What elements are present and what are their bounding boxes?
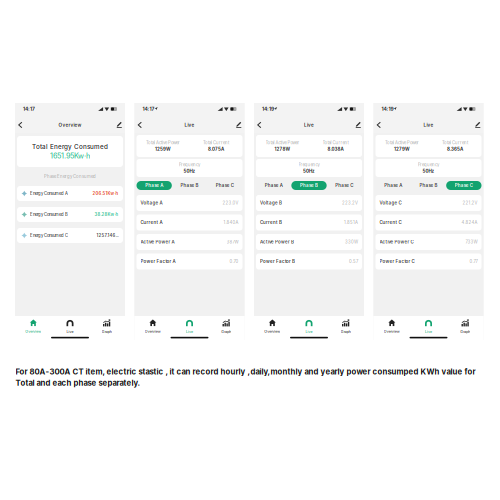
- button[interactable]: Graph: [327, 316, 364, 340]
- staticText: 8.038A: [327, 146, 343, 152]
- button[interactable]: Phase B: [291, 181, 327, 190]
- staticText: Live: [423, 122, 433, 128]
- button[interactable]: Live: [171, 316, 208, 340]
- staticText: 50Hz: [183, 168, 195, 174]
- staticText: Power Factor C: [379, 259, 414, 264]
- staticText: Phase C: [216, 183, 234, 188]
- button[interactable]: Energy Consumed C: [17, 228, 123, 243]
- staticText: Graph: [460, 329, 470, 334]
- button[interactable]: Edit: [110, 117, 122, 133]
- staticText: Active Power A: [140, 239, 174, 245]
- staticText: Frequency: [418, 162, 439, 167]
- button[interactable]: Phase C: [446, 181, 481, 190]
- staticText: 330W: [345, 239, 358, 244]
- staticText: Total Active Power: [146, 140, 180, 145]
- staticText: Power Factor B: [260, 259, 295, 264]
- staticText: Frequency: [179, 162, 200, 167]
- staticText: Overview: [25, 329, 41, 334]
- staticText: Current A: [140, 220, 162, 225]
- staticText: Frequency: [298, 162, 319, 167]
- staticText: Phase B: [300, 183, 318, 188]
- staticText: For 80A-300A CT item, electric stastic ,…: [15, 367, 475, 376]
- staticText: 50Hz: [422, 168, 434, 174]
- staticText: 223.0V: [222, 200, 238, 205]
- staticText: Power Factor A: [140, 259, 175, 264]
- button[interactable]: Graph: [208, 316, 244, 340]
- staticText: Phase Energy Consumed: [44, 174, 96, 179]
- staticText: Overview: [145, 329, 161, 334]
- staticText: Active Power C: [379, 239, 413, 245]
- staticText: Graph: [341, 329, 351, 334]
- button[interactable]: Back: [137, 117, 149, 133]
- button[interactable]: Overview: [15, 316, 52, 340]
- staticText: Total Current: [442, 140, 468, 145]
- button[interactable]: Live: [410, 316, 447, 340]
- staticText: 733W: [465, 239, 477, 244]
- button[interactable]: Phase B: [411, 181, 446, 190]
- staticText: Total Active Power: [385, 140, 419, 145]
- staticText: Active Power B: [260, 239, 294, 245]
- staticText: Phase C: [335, 183, 353, 188]
- button[interactable]: Overview: [373, 316, 410, 340]
- staticText: 14:17: [23, 106, 35, 112]
- button[interactable]: Phase A: [256, 181, 291, 190]
- staticText: 1259W: [155, 146, 171, 152]
- button[interactable]: Phase A: [136, 181, 172, 190]
- staticText: 8.365A: [447, 146, 463, 152]
- staticText: Voltage A: [140, 200, 162, 206]
- button[interactable]: Back: [18, 117, 30, 133]
- button[interactable]: Phase A: [375, 181, 411, 190]
- button[interactable]: Phase C: [327, 181, 362, 190]
- staticText: 8.075A: [208, 146, 224, 152]
- staticText: 206.51Kw·h: [92, 191, 118, 196]
- staticText: Voltage C: [379, 200, 401, 206]
- staticText: Live: [66, 329, 73, 334]
- button[interactable]: Graph: [88, 316, 125, 340]
- button[interactable]: Back: [257, 117, 269, 133]
- button[interactable]: Phase B: [172, 181, 207, 190]
- staticText: 1278W: [274, 146, 290, 152]
- staticText: Phase C: [455, 183, 473, 188]
- button[interactable]: Live: [291, 316, 327, 340]
- staticText: 38.28Kw·h: [94, 212, 118, 217]
- staticText: Live: [425, 329, 432, 334]
- button[interactable]: Back: [376, 117, 388, 133]
- staticText: 50Hz: [303, 168, 315, 174]
- staticText: Overview: [384, 329, 400, 334]
- staticText: 4.824A: [461, 220, 477, 225]
- staticText: Total and each phase separately.: [15, 378, 140, 388]
- staticText: Total Energy Consumed: [32, 143, 108, 150]
- button[interactable]: Live: [52, 316, 88, 340]
- staticText: 14:17: [142, 106, 154, 112]
- button[interactable]: Edit: [229, 117, 241, 133]
- staticText: 1651.95Kw·h: [50, 151, 90, 160]
- staticText: Live: [184, 122, 194, 128]
- button[interactable]: Overview: [254, 316, 291, 340]
- staticText: Phase A: [145, 183, 163, 188]
- button[interactable]: Energy Consumed B: [17, 207, 123, 222]
- button[interactable]: Phase C: [207, 181, 242, 190]
- staticText: Live: [305, 329, 312, 334]
- button[interactable]: Edit: [349, 117, 361, 133]
- staticText: Energy Consumed B: [30, 212, 68, 217]
- staticText: Phase B: [180, 183, 198, 188]
- button[interactable]: Graph: [447, 316, 483, 340]
- button[interactable]: Edit: [468, 117, 480, 133]
- staticText: 0.57: [349, 259, 358, 264]
- staticText: Graph: [102, 329, 112, 334]
- staticText: 221.2V: [462, 200, 477, 205]
- staticText: 14:19: [381, 106, 393, 112]
- button[interactable]: Overview: [134, 316, 171, 340]
- staticText: Phase A: [265, 183, 283, 188]
- staticText: Total Current: [203, 140, 229, 145]
- staticText: Energy Consumed C: [30, 233, 68, 238]
- button[interactable]: Energy Consumed A: [17, 186, 123, 201]
- staticText: Total Current: [322, 140, 348, 145]
- staticText: Live: [304, 122, 314, 128]
- staticText: Overview: [58, 122, 81, 128]
- staticText: Phase B: [419, 183, 437, 188]
- staticText: 14:19: [262, 106, 274, 112]
- staticText: 0.70: [229, 259, 238, 264]
- staticText: 1279W: [394, 146, 410, 152]
- staticText: 0.77: [469, 259, 477, 264]
